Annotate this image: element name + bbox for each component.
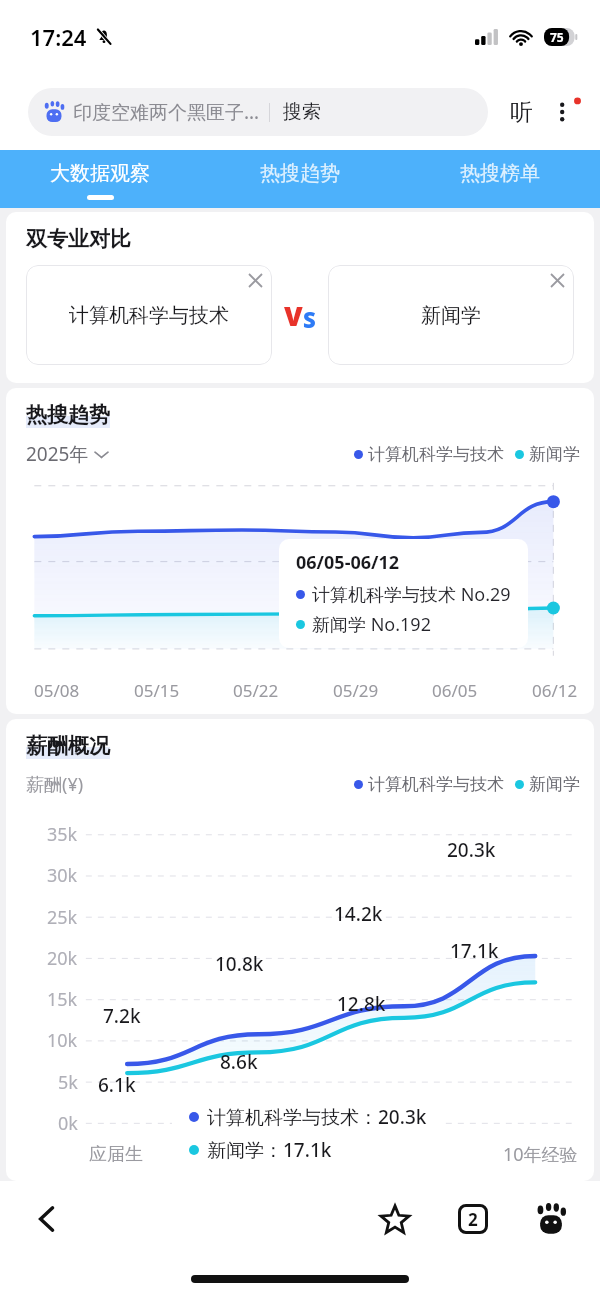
staticText: 计算机科学与技术 [368,774,504,795]
staticText: 35k [47,822,78,847]
button[interactable]: Listen [500,91,542,133]
staticText: 17.1k [450,938,499,964]
staticText: 05/29 [333,679,379,702]
button[interactable]: 印度空难两个黑匣子… [28,88,488,136]
staticText: 双专业对比 [26,226,131,252]
staticText: 05/22 [233,679,279,702]
button[interactable]: Remove [545,268,569,292]
staticText: S [303,304,316,334]
button[interactable]: 大数据观察 [0,150,200,208]
button[interactable]: 计算机科学与技术 [26,265,272,365]
staticText: 30k [47,863,78,888]
staticText: 计算机科学与技术 No.29 [312,582,511,607]
staticText: 应届生 [89,1143,143,1166]
staticText: 06/05-06/12 [296,550,400,575]
button[interactable]: Favorites [368,1192,422,1246]
staticText: 薪酬(¥) [26,772,84,797]
staticText: 25k [47,905,78,930]
button[interactable]: More options [544,92,584,132]
button[interactable]: 热搜榜单 [400,150,600,208]
staticText: 15k [47,987,78,1012]
staticText: 计算机科学与技术 [69,303,229,328]
staticText: 10.8k [215,951,264,977]
button[interactable]: Remove [243,268,267,292]
staticText: 17:24 [30,22,87,52]
staticText: 0k [58,1111,78,1136]
staticText: 热搜趋势 [26,402,110,428]
staticText: 5k [58,1070,78,1095]
staticText: 新闻学：17.1k [207,1137,332,1163]
staticText: 热搜榜单 [460,161,540,186]
staticText: 06/05 [432,679,478,702]
button[interactable]: 新闻学 [328,265,574,365]
staticText: 新闻学 [529,444,580,465]
staticText: 新闻学 [529,774,580,795]
button[interactable]: 2025年 [26,441,108,467]
staticText: 12.8k [337,991,386,1017]
staticText: 薪酬概况 [26,733,110,759]
staticText: 计算机科学与技术：20.3k [207,1104,427,1130]
staticText: 2025年 [26,441,89,467]
staticText: 10k [47,1028,78,1053]
staticText: 05/08 [34,679,80,702]
staticText: 20k [47,946,78,971]
staticText: 计算机科学与技术 [368,444,504,465]
staticText: 大数据观察 [50,161,150,186]
staticText: 6.1k [98,1072,136,1098]
staticText: 新闻学 [421,303,481,328]
staticText: V [284,297,303,334]
button[interactable]: Baidu home [524,1192,578,1246]
staticText: 75 [550,29,564,45]
staticText: 热搜趋势 [260,161,340,186]
staticText: 20.3k [447,837,496,863]
button[interactable]: Tabs, 2 open [446,1192,500,1246]
button[interactable]: 热搜趋势 [200,150,400,208]
staticText: 10年经验 [503,1142,578,1167]
button[interactable]: Back [22,1194,72,1244]
staticText: 05/15 [134,679,180,702]
staticText: 14.2k [334,901,383,927]
staticText: 2 [468,1208,478,1231]
staticText: 8.6k [220,1049,258,1075]
staticText: 搜索 [283,100,321,124]
staticText: 06/12 [532,679,578,702]
staticText: 7.2k [103,1003,141,1029]
staticText: 印度空难两个黑匣子… [73,99,260,125]
staticText: 听 [510,98,533,127]
staticText: 新闻学 No.192 [312,612,431,637]
